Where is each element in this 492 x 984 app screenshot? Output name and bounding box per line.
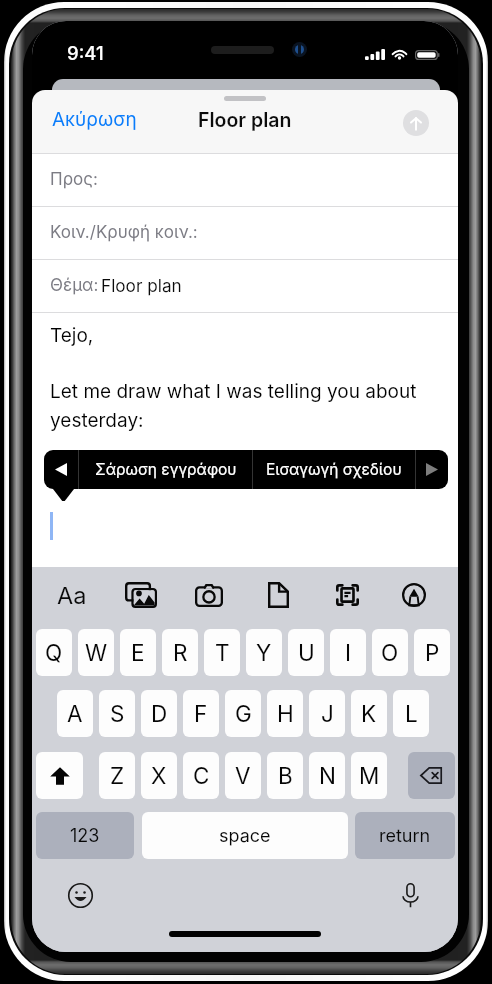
button[interactable]: Send (403, 110, 429, 136)
staticText: C (193, 762, 210, 789)
button[interactable]: Σάρωση εγγράφου (79, 450, 252, 489)
staticText: Floor plan (198, 108, 292, 132)
staticText: U (298, 639, 315, 666)
button[interactable]: Θέμα: (32, 260, 458, 312)
staticText: T (215, 639, 230, 666)
staticText: H (277, 700, 294, 727)
button[interactable]: Camera (187, 573, 231, 617)
button[interactable]: Z (99, 752, 135, 799)
staticText: B (278, 762, 293, 789)
button[interactable]: X (141, 752, 177, 799)
button[interactable]: K (351, 690, 387, 737)
staticText: V (235, 762, 251, 789)
button[interactable]: G (225, 690, 261, 737)
button[interactable]: Y (246, 629, 282, 676)
button[interactable]: U (288, 629, 324, 676)
staticText: Θέμα: (50, 275, 99, 296)
button[interactable]: M (351, 752, 387, 799)
button[interactable]: V (225, 752, 261, 799)
staticText: A (67, 700, 83, 727)
staticText: Εισαγωγή σχεδίου (266, 460, 402, 479)
staticText: Προς: (50, 169, 98, 190)
staticText: W (85, 639, 108, 666)
staticText: return (379, 825, 431, 847)
button[interactable]: Dictation (392, 877, 428, 913)
button[interactable]: F (183, 690, 219, 737)
button[interactable]: Προς: (32, 154, 458, 206)
button[interactable]: Document (256, 573, 300, 617)
staticText: N (319, 762, 336, 789)
staticText: S (110, 700, 125, 727)
button[interactable]: P (414, 629, 450, 676)
staticText: L (405, 700, 418, 727)
staticText: Aa (57, 581, 87, 609)
button[interactable]: C (183, 752, 219, 799)
button[interactable]: Backspace (408, 752, 455, 799)
staticText: Ακύρωση (52, 108, 137, 131)
staticText: E (131, 639, 145, 666)
button[interactable]: Text format (50, 573, 94, 617)
button[interactable]: N (309, 752, 345, 799)
button[interactable]: E (120, 629, 156, 676)
button[interactable]: return (355, 812, 455, 859)
staticText: J (321, 700, 334, 727)
button[interactable]: T (204, 629, 240, 676)
button[interactable]: W (78, 629, 114, 676)
staticText: X (151, 762, 167, 789)
staticText: Z (110, 762, 125, 789)
staticText: Q (45, 639, 63, 666)
button[interactable]: L (393, 690, 429, 737)
button[interactable]: Κοιν./Κρυφή κοιν.: (32, 207, 458, 259)
staticText: space (219, 825, 271, 847)
button[interactable]: B (267, 752, 303, 799)
button[interactable]: D (141, 690, 177, 737)
staticText: K (361, 700, 377, 727)
staticText: G (235, 700, 252, 727)
button[interactable]: J (309, 690, 345, 737)
button[interactable]: R (162, 629, 198, 676)
button[interactable]: Previous (44, 450, 78, 489)
staticText: M (359, 762, 380, 789)
staticText: P (425, 639, 440, 666)
staticText: I (345, 639, 352, 666)
staticText: Let me draw what I was telling you about… (50, 380, 417, 432)
button[interactable]: O (372, 629, 408, 676)
button[interactable]: A (57, 690, 93, 737)
staticText: D (151, 700, 168, 727)
staticText: 9:41 (67, 42, 104, 64)
button[interactable]: space (142, 812, 348, 859)
button[interactable]: Next (416, 450, 448, 489)
button[interactable]: Scan document (325, 573, 369, 617)
button[interactable]: I (330, 629, 366, 676)
staticText: F (194, 700, 208, 727)
button[interactable]: Photos (119, 573, 163, 617)
button[interactable]: Shift (36, 752, 83, 799)
staticText: R (173, 639, 188, 666)
staticText: O (381, 639, 399, 666)
button[interactable]: Ακύρωση (32, 102, 149, 137)
button[interactable]: Emoji (62, 877, 98, 913)
button[interactable]: S (99, 690, 135, 737)
staticText: 123 (70, 825, 100, 847)
staticText: Y (256, 639, 272, 666)
button[interactable]: Εισαγωγή σχεδίου (253, 450, 415, 489)
staticText: Σάρωση εγγράφου (95, 460, 237, 479)
button[interactable]: Markup (392, 573, 436, 617)
staticText: Κοιν./Κρυφή κοιν.: (50, 222, 198, 243)
button[interactable]: 123 (36, 812, 134, 859)
staticText: Tejo, (50, 324, 94, 347)
button[interactable]: Q (36, 629, 72, 676)
staticText: Floor plan (101, 275, 182, 296)
button[interactable]: H (267, 690, 303, 737)
